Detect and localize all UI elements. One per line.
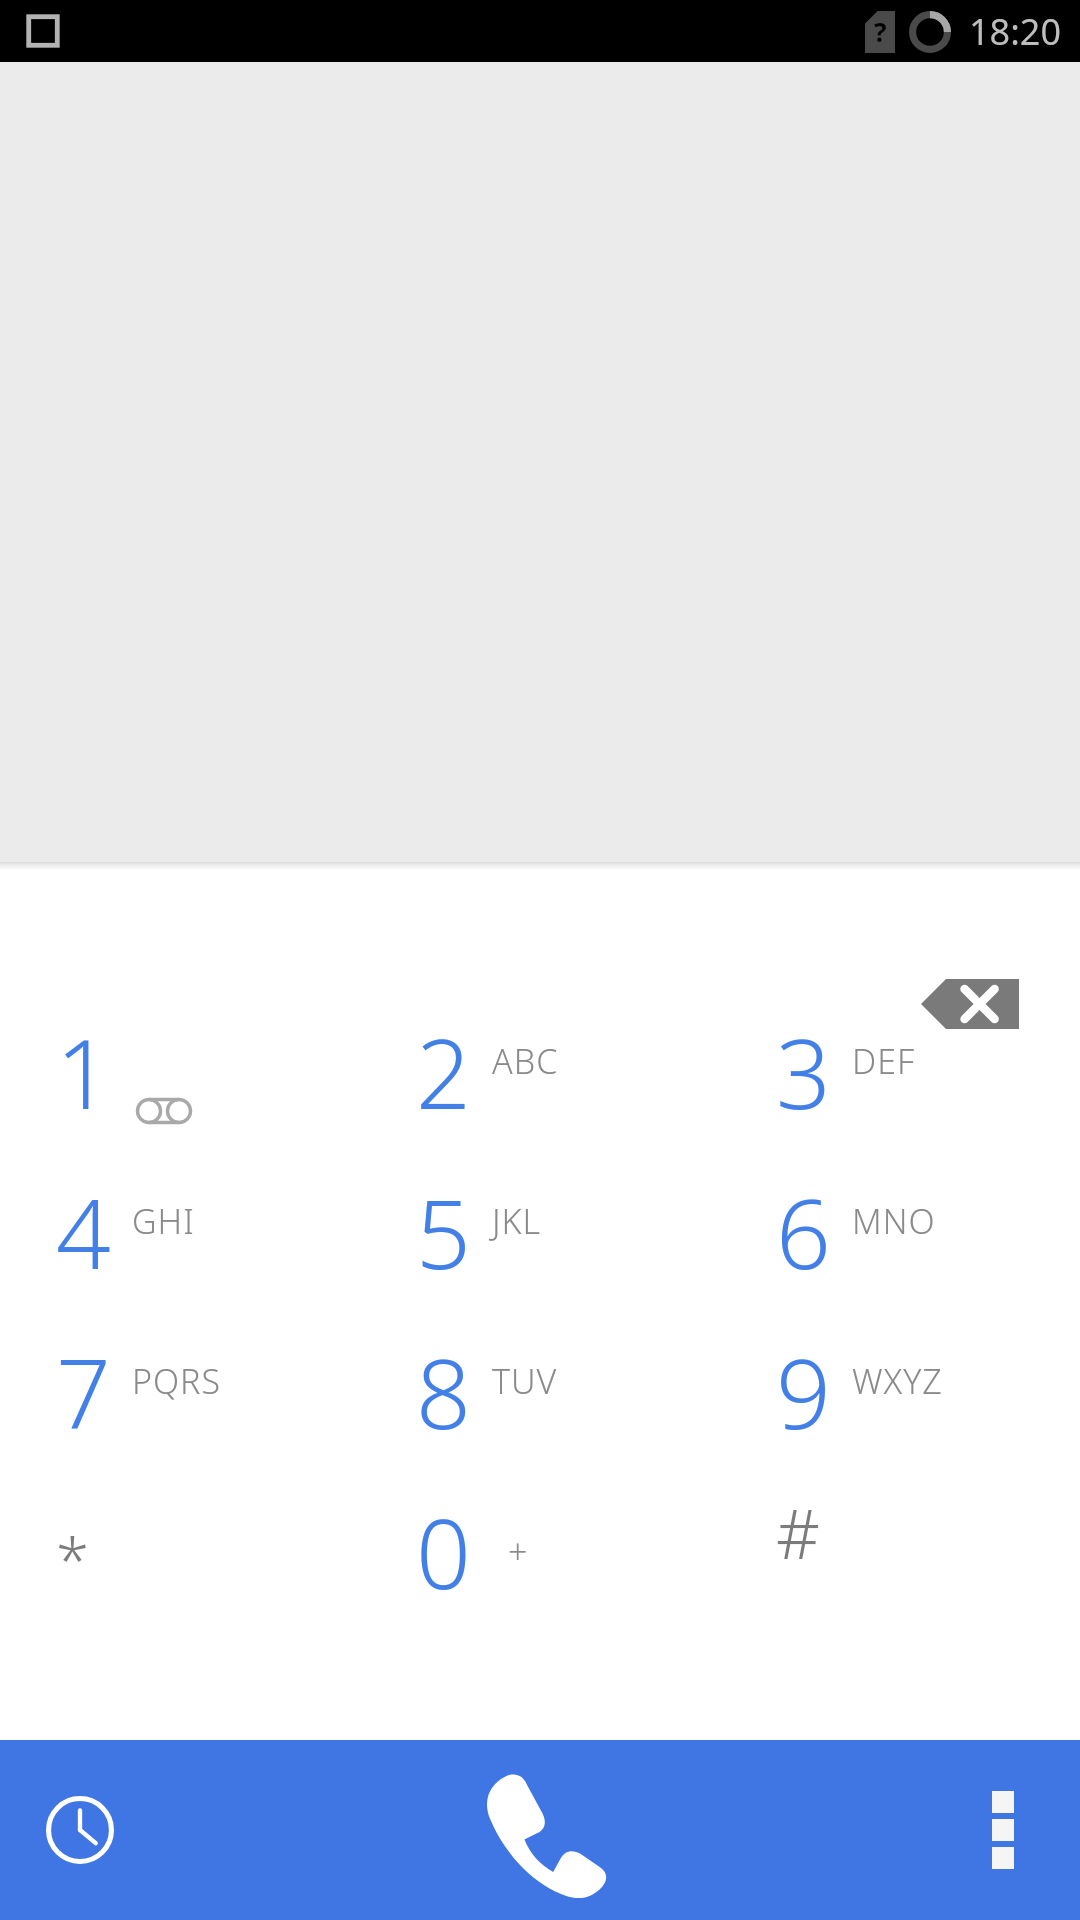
staticText: 0 <box>416 1486 471 1617</box>
button[interactable]: 8 <box>360 1336 720 1496</box>
staticText: 4 <box>56 1166 111 1297</box>
staticText: + <box>508 1528 529 1574</box>
staticText: 5 <box>416 1166 471 1297</box>
staticText: PQRS <box>132 1358 222 1404</box>
staticText: 6 <box>776 1166 831 1297</box>
staticText: ? <box>874 14 887 49</box>
staticText: * <box>56 1518 90 1600</box>
button[interactable]: * <box>0 1496 360 1656</box>
button[interactable]: Recent calls <box>20 1770 140 1890</box>
staticText: 7 <box>56 1326 111 1457</box>
button[interactable]: # <box>720 1496 1080 1656</box>
staticText: JKL <box>492 1198 542 1244</box>
staticText: WXYZ <box>852 1358 943 1404</box>
staticText: 1 <box>56 1006 111 1137</box>
staticText: 9 <box>776 1326 831 1457</box>
staticText: 2 <box>416 1006 471 1137</box>
staticText: 8 <box>416 1326 471 1457</box>
staticText: 18:20 <box>969 7 1062 56</box>
button[interactable]: 4 <box>0 1176 360 1336</box>
button[interactable]: 3 <box>720 1016 1080 1176</box>
staticText: GHI <box>132 1198 195 1244</box>
button[interactable]: 1 <box>0 1016 360 1176</box>
button[interactable]: 7 <box>0 1336 360 1496</box>
button[interactable]: 6 <box>720 1176 1080 1336</box>
staticText: TUV <box>492 1358 558 1404</box>
button[interactable]: Call <box>460 1750 620 1910</box>
staticText: # <box>776 1486 820 1579</box>
staticText: DEF <box>852 1038 916 1084</box>
button[interactable]: More options <box>948 1775 1058 1885</box>
button[interactable]: 9 <box>720 1336 1080 1496</box>
staticText: MNO <box>852 1198 936 1244</box>
button[interactable]: 0 <box>360 1496 720 1656</box>
staticText: 3 <box>776 1006 831 1137</box>
button[interactable]: 2 <box>360 1016 720 1176</box>
button[interactable]: Backspace <box>905 958 1035 1050</box>
staticText: ABC <box>492 1038 559 1084</box>
button[interactable]: 5 <box>360 1176 720 1336</box>
